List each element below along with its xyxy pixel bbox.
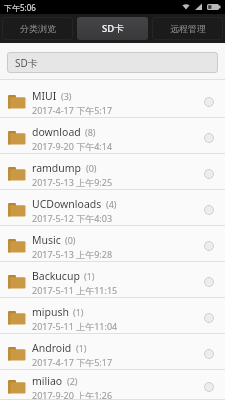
- staticText: (1): [76, 342, 87, 354]
- button[interactable]: 分类浏览: [2, 17, 73, 40]
- staticText: miliao: [32, 374, 63, 388]
- staticText: SD卡: [15, 56, 38, 70]
- button[interactable]: Android: [0, 334, 225, 370]
- staticText: (3): [61, 90, 72, 102]
- button[interactable]: Music: [0, 226, 225, 262]
- button[interactable]: 远程管理: [152, 17, 223, 40]
- staticText: Backucup: [32, 269, 80, 283]
- staticText: 下午5:06: [4, 2, 36, 13]
- staticText: (1): [84, 270, 95, 282]
- staticText: 2017-5-11 上午11:04: [32, 320, 118, 332]
- staticText: download: [32, 125, 81, 139]
- staticText: SD卡: [102, 22, 124, 35]
- staticText: 2017-9-20 上午1:26: [32, 389, 113, 400]
- staticText: (2): [67, 375, 78, 387]
- staticText: (0): [65, 234, 76, 246]
- button[interactable]: Backucup: [0, 262, 225, 298]
- button[interactable]: UCDownloads: [0, 190, 225, 226]
- staticText: MIUI: [32, 89, 57, 103]
- staticText: (1): [73, 306, 84, 318]
- staticText: (4): [106, 198, 117, 210]
- button[interactable]: download: [0, 118, 225, 154]
- staticText: (0): [86, 162, 97, 174]
- staticText: 2017-4-17 下午5:17: [32, 356, 113, 368]
- staticText: 2017-9-20 下午4:14: [32, 140, 113, 152]
- button[interactable]: SD卡: [7, 52, 218, 73]
- button[interactable]: MIUI: [0, 82, 225, 118]
- staticText: Music: [32, 233, 61, 247]
- staticText: 分类浏览: [20, 23, 56, 34]
- button[interactable]: miliao: [0, 370, 225, 400]
- staticText: 2017-4-17 下午5:17: [32, 104, 113, 116]
- button[interactable]: mipush: [0, 298, 225, 334]
- staticText: 2017-5-12 下午4:03: [32, 212, 113, 224]
- staticText: (8): [85, 126, 96, 138]
- button[interactable]: SD卡: [77, 17, 148, 40]
- staticText: 2017-5-13 上午9:25: [32, 176, 113, 188]
- staticText: 2017-5-13 上午9:28: [32, 248, 113, 260]
- staticText: mipush: [32, 305, 69, 319]
- button[interactable]: ramdump: [0, 154, 225, 190]
- staticText: UCDownloads: [32, 197, 102, 211]
- staticText: ramdump: [32, 161, 82, 175]
- staticText: 远程管理: [170, 23, 206, 34]
- staticText: Android: [32, 341, 72, 355]
- staticText: 2017-5-11 上午11:15: [32, 284, 118, 296]
